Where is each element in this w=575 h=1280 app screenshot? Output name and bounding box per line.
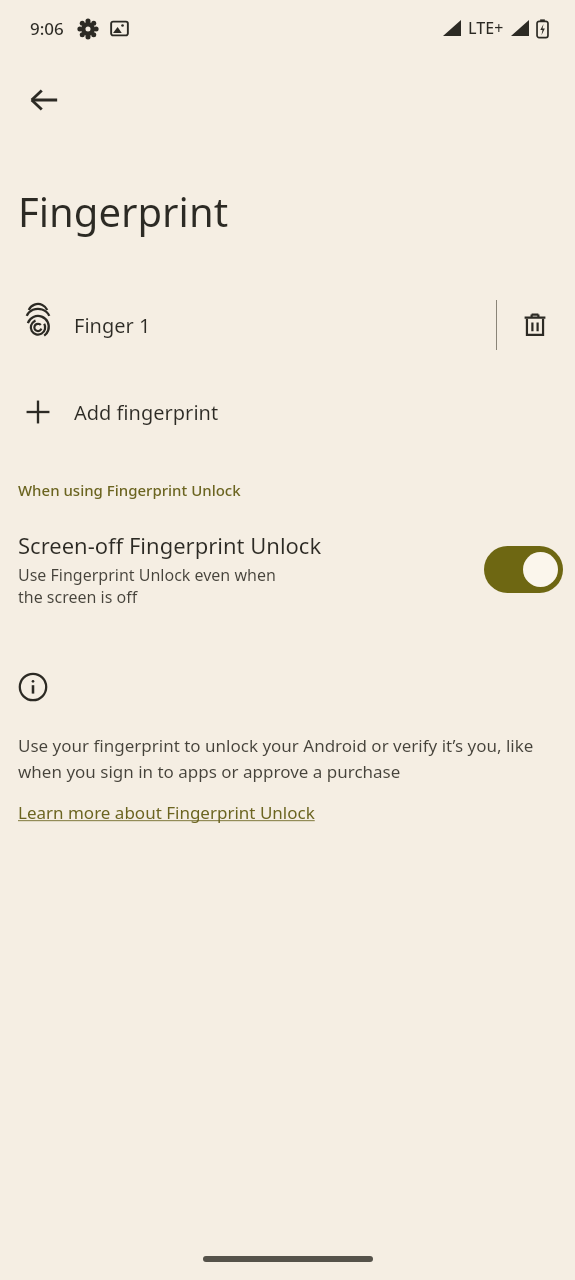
button[interactable]: Finger 1 (0, 294, 575, 356)
staticText: Screen-off Fingerprint Unlock (18, 530, 322, 560)
button[interactable]: Delete fingerprint (509, 299, 561, 351)
staticText: Learn more about Fingerprint Unlock (18, 801, 315, 824)
staticText: When using Fingerprint Unlock (18, 480, 241, 500)
button[interactable]: Screen-off Fingerprint Unlock toggle (484, 546, 563, 593)
staticText: Fingerprint (18, 184, 229, 238)
staticText: Finger 1 (74, 312, 151, 339)
button[interactable]: Screen-off Fingerprint Unlock (0, 530, 575, 608)
staticText: Use Fingerprint Unlock even when the scr… (18, 564, 288, 608)
staticText: Add fingerprint (74, 399, 219, 426)
button[interactable]: Add fingerprint (0, 384, 575, 440)
staticText: 9:06 (30, 17, 64, 40)
button[interactable]: Back (14, 70, 74, 130)
button[interactable]: Learn more about Fingerprint Unlock (18, 801, 315, 824)
staticText: LTE+ (468, 17, 504, 39)
staticText: Use your fingerprint to unlock your Andr… (18, 734, 551, 783)
